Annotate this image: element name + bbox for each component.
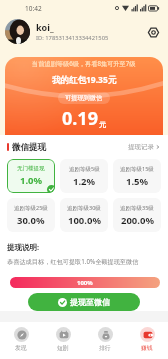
staticText: 发现 <box>15 344 27 351</box>
staticText: 追剧等级15级 <box>120 165 154 173</box>
button[interactable]: 追剧等级15级 <box>113 159 161 193</box>
staticText: 1.0% <box>20 174 43 187</box>
staticText: 追剧等级25级 <box>14 204 48 212</box>
button[interactable]: 追剧等级5级 <box>60 159 108 193</box>
staticText: 1.5% <box>126 175 149 188</box>
staticText: 排行 <box>99 344 111 351</box>
staticText: 追剧等级5级 <box>69 165 100 173</box>
staticText: 0.19 <box>62 106 98 131</box>
staticText: 100.0% <box>68 214 101 227</box>
button[interactable]: 提现记录 <box>128 143 161 151</box>
button[interactable]: 提现至微信 <box>28 293 140 311</box>
staticText: 可提现到微信 <box>65 94 103 102</box>
button[interactable]: 追剧等级35级 <box>113 198 161 232</box>
staticText: 无门槛提现 <box>17 165 45 172</box>
staticText: 追剧等级35级 <box>120 204 154 212</box>
staticText: 200.0% <box>121 214 154 227</box>
button[interactable]: 排行 <box>84 322 126 354</box>
button[interactable]: 发现 <box>0 322 42 354</box>
staticText: 微信提现 <box>12 142 46 153</box>
staticText: 追剧等级30级 <box>67 204 101 212</box>
staticText: 30.0% <box>17 214 45 227</box>
staticText: 1.2% <box>73 175 96 188</box>
button[interactable]: Settings <box>146 25 160 39</box>
staticText: 我的红包19.35元 <box>52 74 117 86</box>
button[interactable]: 追剧等级25级 <box>7 198 55 232</box>
staticText: 100% <box>77 279 93 287</box>
staticText: 元 <box>99 120 106 129</box>
staticText: 提现说明: <box>7 242 40 252</box>
button[interactable]: 无门槛提现 <box>7 159 55 193</box>
staticText: 短剧 <box>57 344 69 351</box>
staticText: 当前追剧等级6级，再看8集可升至7级 <box>32 59 136 67</box>
button[interactable]: 追剧等级30级 <box>60 198 108 232</box>
staticText: 恭喜达成目标，红包可提取1.0%全额提现至微信 <box>7 257 139 265</box>
staticText: koi_ <box>36 21 54 33</box>
staticText: 提现记录 <box>128 143 154 151</box>
staticText: 10:42 <box>25 4 42 13</box>
staticText: 赚钱 <box>141 344 153 351</box>
button[interactable]: 短剧 <box>42 322 84 354</box>
staticText: 提现至微信 <box>70 297 110 307</box>
button[interactable]: 赚钱 <box>126 322 168 354</box>
staticText: ID: 1785313413334421505 <box>36 34 109 42</box>
